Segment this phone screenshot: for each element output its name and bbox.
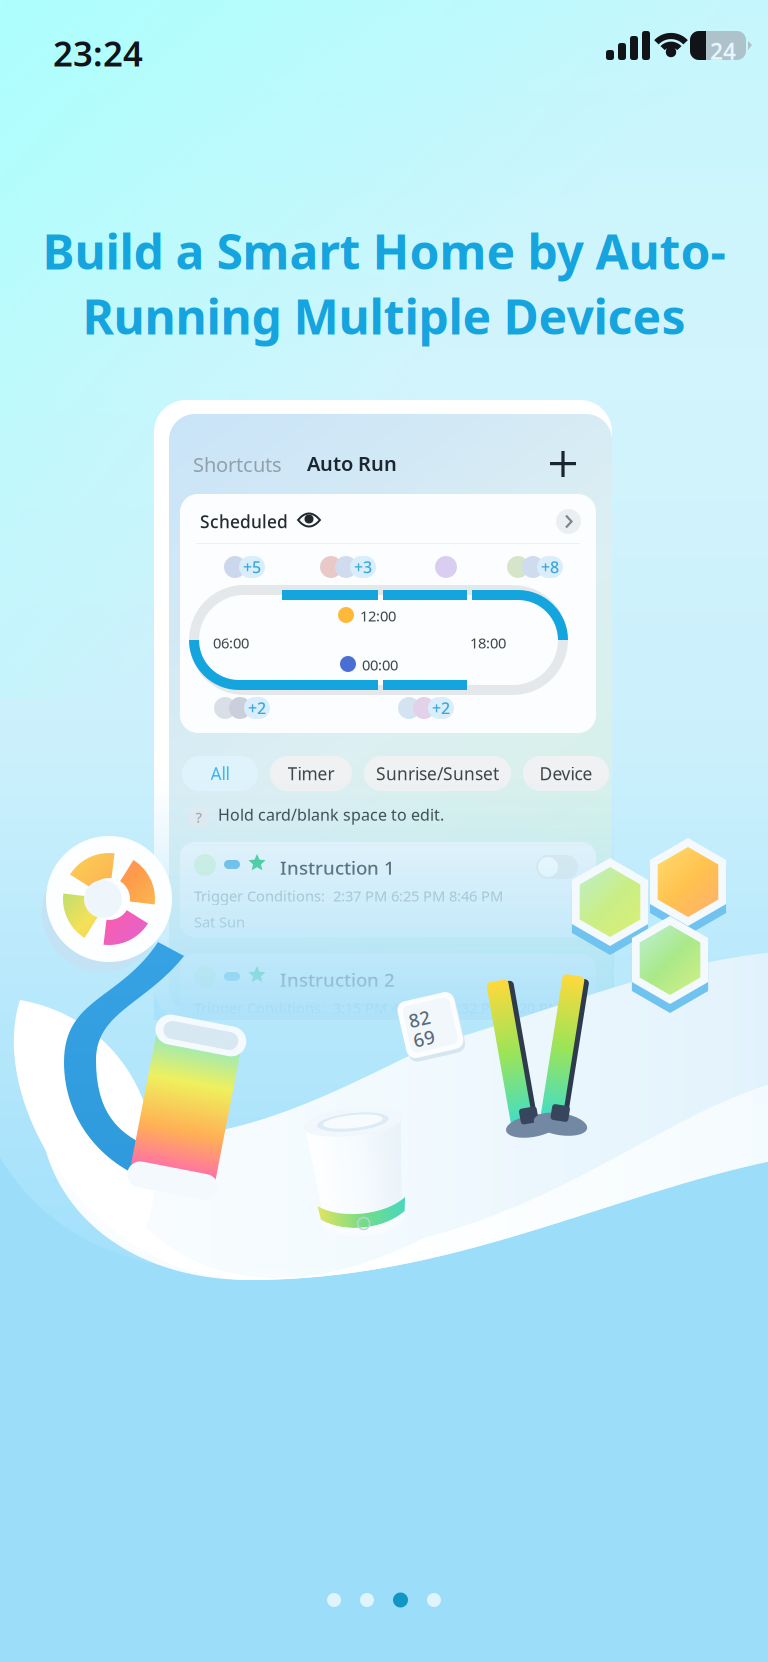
staticText: Shortcuts <box>193 451 282 478</box>
staticText: 24 <box>710 36 736 66</box>
staticText: 18:00 <box>470 633 506 652</box>
button[interactable]: Page 3 <box>393 1592 408 1607</box>
button[interactable]: Instruction 2 <box>180 954 596 1049</box>
staticText: 06:00 <box>213 633 249 652</box>
staticText: Sunrise/Sunset <box>376 762 499 785</box>
staticText: Instruction 1 <box>280 855 395 880</box>
staticText: 23:24 <box>53 30 143 76</box>
button[interactable]: Add <box>550 451 576 477</box>
staticText: +2 <box>248 697 266 719</box>
button[interactable]: Sunrise/Sunset <box>364 756 511 791</box>
staticText: Trigger Conditions: 2:37 PM 6:25 PM 8:46… <box>194 886 503 905</box>
button[interactable]: Timer <box>270 756 352 791</box>
staticText: 82 <box>411 1004 433 1029</box>
staticText: Sat Sun <box>194 912 245 931</box>
staticText: +2 <box>432 697 450 719</box>
staticText: All <box>210 762 229 785</box>
staticText: Running Multiple Devices <box>82 284 685 348</box>
staticText: Timer <box>287 762 334 785</box>
staticText: +8 <box>541 556 559 578</box>
staticText: Trigger Conditions: 3:15 PM 4:54 PM 7:32… <box>194 998 561 1017</box>
staticText: 00:00 <box>362 655 398 674</box>
staticText: Build a Smart Home by Auto- <box>42 219 725 283</box>
staticText: Everyday <box>194 1024 254 1043</box>
staticText: Device <box>539 762 592 785</box>
staticText: +3 <box>354 556 372 578</box>
staticText: +5 <box>243 556 261 578</box>
button[interactable]: Instruction 1 <box>180 842 596 937</box>
staticText: ? <box>195 807 202 827</box>
staticText: Instruction 2 <box>280 967 395 992</box>
staticText: 69 <box>411 1024 433 1049</box>
button[interactable]: Page 4 <box>427 1593 441 1607</box>
button[interactable]: All <box>182 756 258 791</box>
staticText: Auto Run <box>307 450 397 477</box>
button[interactable]: Page 1 <box>327 1593 341 1607</box>
button[interactable]: Device <box>523 756 609 791</box>
button[interactable]: Open scheduled <box>556 509 581 534</box>
staticText: 12:00 <box>360 606 396 625</box>
staticText: Hold card/blank space to edit. <box>218 804 444 825</box>
staticText: Scheduled <box>200 510 288 533</box>
button[interactable]: Page 2 <box>360 1593 374 1607</box>
